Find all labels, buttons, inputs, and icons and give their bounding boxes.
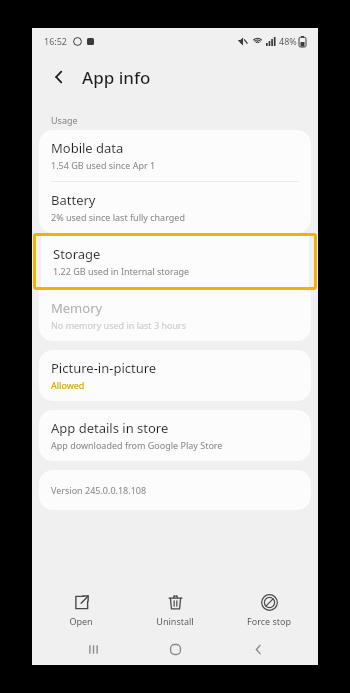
staticText: No memory used in last 3 hours [51, 319, 187, 331]
staticText: 1.54 GB used since Apr 1 [51, 159, 156, 171]
button[interactable]: Picture-in-picture [39, 350, 311, 401]
staticText: Allowed [51, 379, 85, 391]
staticText: Storage [53, 245, 101, 263]
staticText: Open [69, 615, 93, 627]
staticText: 48% [279, 35, 297, 47]
button[interactable]: Memory [39, 290, 311, 341]
button[interactable]: Back [46, 64, 72, 90]
button[interactable]: Home [153, 633, 197, 665]
button[interactable]: Mobile data [39, 130, 311, 181]
staticText: Memory [51, 299, 103, 317]
staticText: Force stop [247, 615, 291, 627]
staticText: Usage [51, 114, 78, 126]
staticText: Battery [51, 191, 96, 209]
button[interactable]: Battery [39, 182, 311, 233]
button[interactable]: Back [236, 633, 280, 665]
button[interactable]: Recents [71, 633, 115, 665]
staticText: Uninstall [156, 615, 194, 627]
button[interactable]: Storage [41, 236, 309, 287]
staticText: App info [82, 66, 151, 89]
staticText: 2% used since last fully charged [51, 211, 185, 223]
staticText: 1.22 GB used in Internal storage [53, 265, 190, 277]
staticText: Version 245.0.0.18.108 [51, 484, 147, 496]
staticText: 16:52 [44, 35, 68, 47]
button[interactable]: Uninstall [130, 591, 220, 630]
staticText: Picture-in-picture [51, 359, 157, 377]
staticText: Mobile data [51, 139, 124, 157]
staticText: App details in store [51, 419, 169, 437]
button[interactable]: Open [36, 591, 126, 630]
button[interactable]: Force stop [224, 591, 314, 630]
button[interactable]: App details in store [39, 410, 311, 461]
staticText: App downloaded from Google Play Store [51, 439, 223, 451]
